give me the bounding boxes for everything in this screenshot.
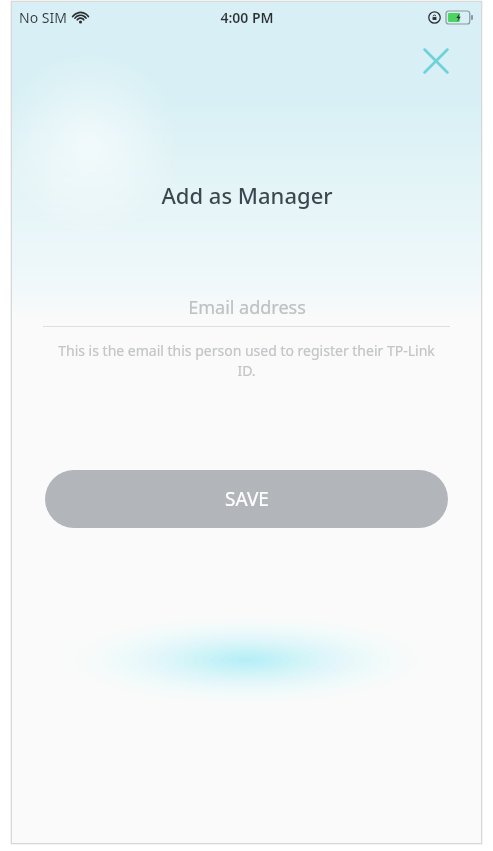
staticText: Email address bbox=[188, 295, 306, 320]
staticText: This is the email this person used to re… bbox=[52, 341, 441, 381]
staticText: 4:00 PM bbox=[220, 8, 274, 27]
button[interactable]: Close bbox=[409, 34, 463, 88]
staticText: Add as Manager bbox=[161, 180, 333, 210]
staticText: SAVE bbox=[225, 486, 269, 512]
button[interactable]: SAVE bbox=[45, 470, 448, 528]
staticText: No SIM bbox=[19, 8, 67, 27]
button[interactable]: Email address bbox=[43, 292, 450, 327]
